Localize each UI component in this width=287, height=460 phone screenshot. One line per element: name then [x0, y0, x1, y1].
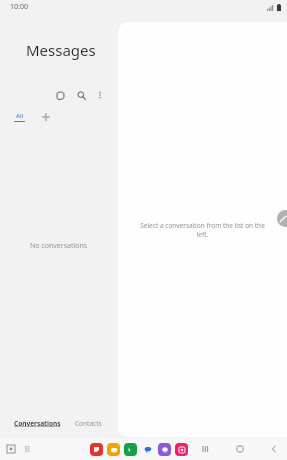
button[interactable]: My Files	[107, 443, 120, 456]
button[interactable]: Compose new message	[277, 210, 287, 227]
button[interactable]: Home	[233, 442, 247, 456]
button[interactable]: Recent apps	[5, 443, 17, 455]
staticText: Messages	[26, 40, 96, 60]
button[interactable]: Phone	[124, 443, 137, 456]
staticText: 10:00	[10, 2, 28, 12]
button[interactable]: All apps	[22, 443, 34, 455]
button[interactable]: Messages	[141, 443, 154, 456]
staticText: Conversations	[14, 419, 61, 428]
staticText: No conversations	[30, 241, 88, 251]
button[interactable]: More options	[92, 87, 108, 103]
button[interactable]: All	[12, 112, 27, 122]
button[interactable]: Back	[267, 442, 281, 456]
button[interactable]: Camera	[175, 443, 188, 456]
button[interactable]: Internet	[158, 443, 171, 456]
button[interactable]: Contacts	[75, 419, 102, 428]
button[interactable]: Conversations	[14, 419, 61, 428]
button[interactable]: Search	[72, 86, 90, 104]
button[interactable]: Recents	[199, 442, 213, 456]
button[interactable]: Gallery	[90, 443, 103, 456]
staticText: All	[16, 112, 24, 120]
button[interactable]: Bixby chat	[51, 86, 69, 104]
staticText: Select a conversation from the list on t…	[140, 221, 265, 239]
button[interactable]: Add category	[39, 110, 53, 124]
